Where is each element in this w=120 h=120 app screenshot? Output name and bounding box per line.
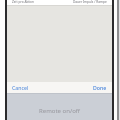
- staticText: Done: [93, 84, 107, 91]
- staticText: Dauer Impuls / Rampe: [73, 0, 107, 4]
- staticText: Remote on/off: [7, 107, 112, 115]
- staticText: Cancel: [12, 84, 29, 91]
- staticText: Zeit pro Aktion: [12, 0, 35, 4]
- button[interactable]: Cancel: [7, 82, 34, 93]
- button[interactable]: Remote on/off: [7, 105, 112, 117]
- button[interactable]: Done: [88, 82, 112, 93]
